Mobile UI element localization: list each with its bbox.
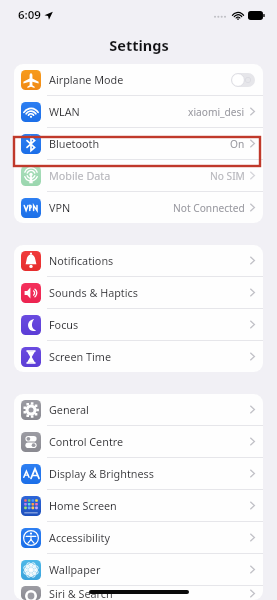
button[interactable]: Wallpaper — [14, 554, 263, 585]
button[interactable]: Accessibility — [14, 522, 263, 553]
staticText: No SIM — [210, 169, 245, 183]
button[interactable]: Home Screen — [14, 490, 263, 521]
staticText: Wallpaper — [49, 562, 101, 577]
staticText: Focus — [49, 317, 79, 332]
staticText: Not Connected — [173, 201, 245, 215]
staticText: WLAN — [49, 104, 80, 119]
staticText: Accessibility — [49, 530, 110, 545]
button[interactable]: WLAN — [14, 96, 263, 127]
staticText: Settings — [109, 35, 169, 55]
staticText: General — [49, 402, 89, 417]
staticText: Bluetooth — [49, 136, 100, 151]
staticText: Notifications — [49, 253, 114, 268]
button[interactable]: Airplane Mode toggle — [231, 73, 255, 87]
button[interactable]: General — [14, 394, 263, 425]
button[interactable]: Sounds & Haptics — [14, 277, 263, 308]
button[interactable]: Display & Brightness — [14, 458, 263, 489]
staticText: 6:09 — [18, 7, 41, 23]
staticText: Home Screen — [49, 498, 117, 513]
button[interactable]: Screen Time — [14, 341, 263, 372]
staticText: xiaomi_desi — [188, 105, 245, 119]
staticText: VPN — [49, 200, 71, 215]
staticText: On — [230, 137, 245, 151]
button[interactable]: Focus — [14, 309, 263, 340]
button[interactable]: Mobile Data — [14, 160, 263, 191]
staticText: Siri & Search — [49, 586, 113, 600]
button[interactable]: Siri & Search — [14, 586, 263, 600]
staticText: Airplane Mode — [49, 72, 124, 87]
staticText: Screen Time — [49, 349, 111, 364]
button[interactable]: Control Centre — [14, 426, 263, 457]
button[interactable]: Airplane Mode — [14, 64, 263, 95]
button[interactable]: Bluetooth — [14, 128, 263, 159]
staticText: Mobile Data — [49, 168, 111, 183]
button[interactable]: Notifications — [14, 245, 263, 276]
staticText: Sounds & Haptics — [49, 285, 138, 300]
staticText: Display & Brightness — [49, 466, 154, 481]
staticText: Control Centre — [49, 434, 124, 449]
button[interactable]: VPN — [14, 192, 263, 223]
